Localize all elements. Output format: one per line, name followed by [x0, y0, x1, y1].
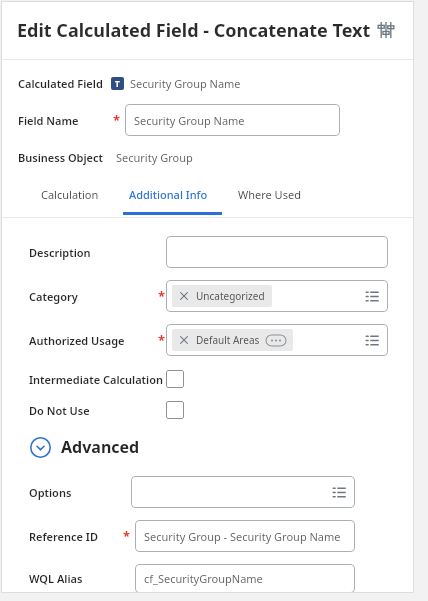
button[interactable]: Uncategorized — [166, 280, 388, 312]
staticText: T — [115, 78, 120, 89]
button[interactable]: Uncategorized — [172, 285, 272, 307]
staticText: Category — [29, 289, 78, 304]
staticText: Where Used — [238, 187, 301, 202]
staticText: * — [158, 287, 166, 305]
button[interactable]: Additional Info — [125, 187, 212, 202]
staticText: Security Group — [116, 150, 193, 165]
staticText: Description — [29, 245, 91, 260]
button[interactable]: Open Authorized Usage list — [362, 330, 382, 350]
staticText: Authorized Usage — [29, 333, 125, 348]
staticText: Reference ID — [29, 529, 98, 544]
staticText: Advanced — [61, 436, 140, 458]
button[interactable]: Default Areas — [166, 324, 388, 356]
staticText: * — [123, 527, 131, 545]
staticText: Intermediate Calculation — [29, 372, 163, 387]
button[interactable]: View settings — [372, 16, 400, 44]
button[interactable]: Default Areas — [172, 329, 293, 351]
staticText: Default Areas — [196, 333, 260, 347]
button[interactable] — [166, 370, 184, 388]
staticText: * — [158, 331, 166, 349]
button[interactable] — [166, 401, 184, 419]
button[interactable]: Security Group Name — [125, 104, 340, 136]
button[interactable]: Open Category list — [362, 286, 382, 306]
staticText: Options — [29, 485, 72, 500]
staticText: cf_SecurityGroupName — [144, 571, 263, 586]
staticText: Do Not Use — [29, 403, 90, 418]
staticText: Security Group Name — [130, 76, 241, 91]
button[interactable]: Calculation — [37, 187, 103, 202]
button[interactable]: Advanced — [30, 436, 140, 458]
staticText: Security Group Name — [134, 113, 245, 128]
button[interactable]: Where Used — [234, 187, 305, 202]
staticText: * — [113, 111, 121, 129]
staticText: Calculation — [41, 187, 99, 202]
staticText: Uncategorized — [196, 289, 265, 303]
staticText: WQL Alias — [29, 571, 83, 586]
staticText: Calculated Field — [18, 76, 111, 91]
staticText: Business Object — [18, 150, 116, 165]
button[interactable]: cf_SecurityGroupName — [135, 564, 355, 593]
button[interactable]: Open Options list — [131, 476, 355, 508]
button[interactable] — [166, 236, 388, 268]
staticText: Additional Info — [129, 187, 208, 202]
staticText: Edit Calculated Field - Concatenate Text — [17, 18, 371, 43]
staticText: Security Group - Security Group Name — [144, 529, 341, 544]
button[interactable]: Open Options list — [329, 482, 349, 502]
button[interactable]: Security Group - Security Group Name — [135, 520, 355, 552]
staticText: Field Name — [18, 113, 79, 128]
